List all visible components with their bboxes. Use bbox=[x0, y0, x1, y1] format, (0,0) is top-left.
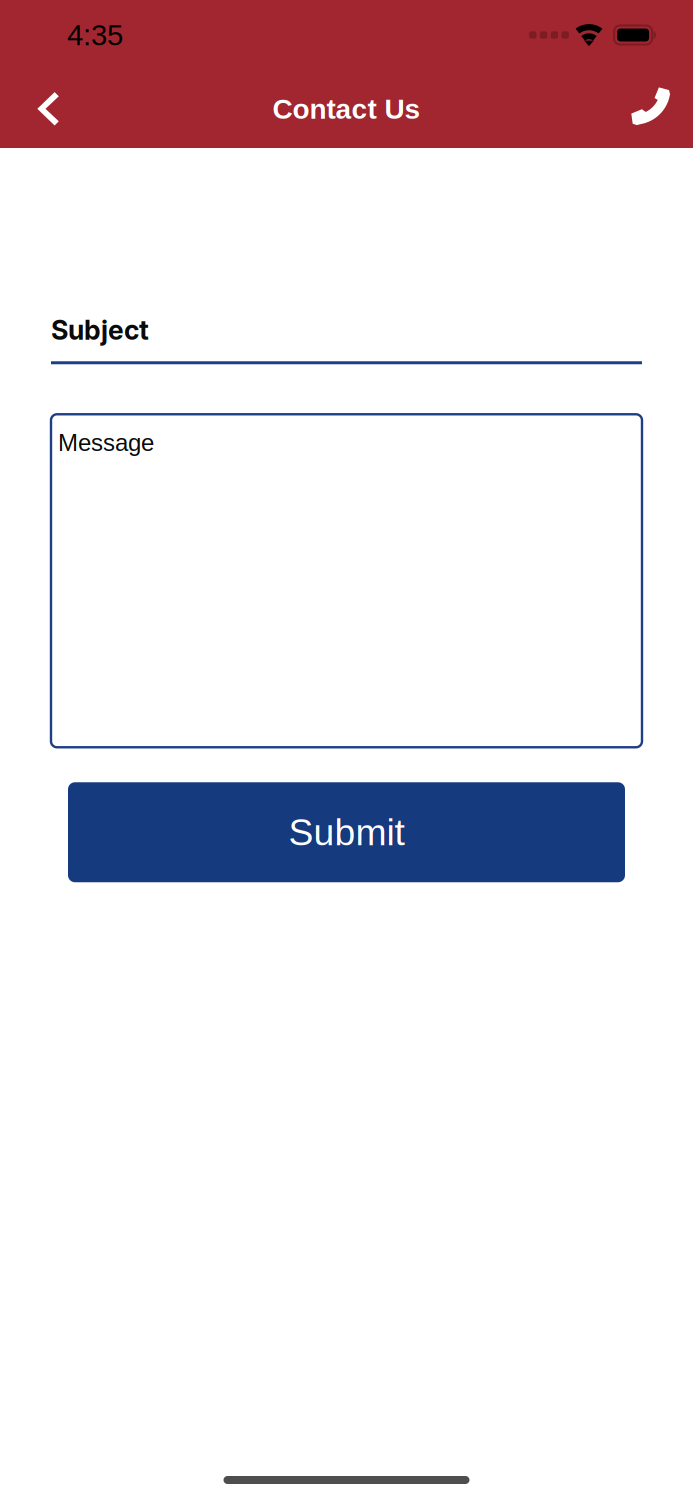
staticText: Subject bbox=[51, 314, 149, 346]
staticText: Submit bbox=[288, 811, 404, 853]
staticText: 4:35 bbox=[67, 19, 123, 51]
button[interactable]: Subject bbox=[51, 314, 642, 364]
button[interactable]: Message bbox=[51, 414, 642, 747]
staticText: Message bbox=[58, 429, 154, 456]
staticText: Contact Us bbox=[272, 93, 420, 125]
button[interactable]: Submit bbox=[68, 782, 625, 882]
button[interactable]: Back bbox=[0, 70, 98, 148]
button[interactable]: Call bbox=[611, 70, 693, 148]
